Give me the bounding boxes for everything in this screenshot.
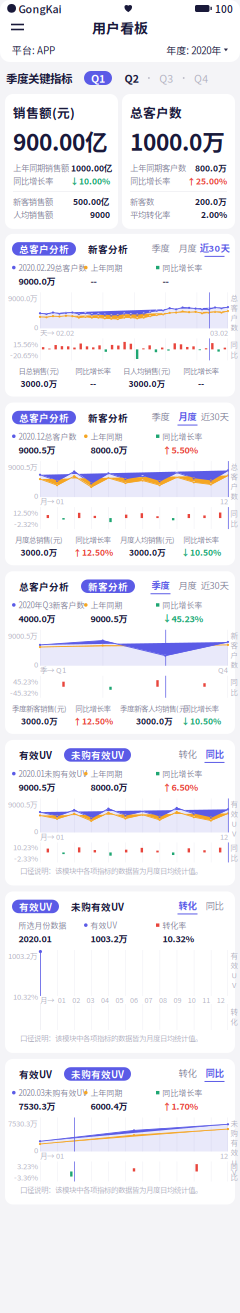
staticText: 9000.5万	[8, 630, 38, 641]
button[interactable]: 近30天	[201, 577, 228, 595]
staticText: 9000.5万	[19, 443, 56, 456]
staticText: 效	[230, 808, 237, 819]
staticText: 8000.0万	[91, 443, 128, 456]
staticText: -3.36%	[14, 1171, 38, 1183]
button[interactable]: 年度: 2020年	[166, 40, 228, 60]
button[interactable]: 总客户分析	[12, 411, 76, 424]
staticText: 6000.4万	[91, 1099, 128, 1112]
button[interactable]: 有效UV	[12, 900, 59, 913]
button[interactable]: 月度	[174, 240, 201, 258]
staticText: 天→ 02.02	[40, 327, 74, 338]
staticText: 客	[230, 302, 237, 313]
button[interactable]: 转化	[174, 746, 201, 764]
button[interactable]: 未购有效UV	[64, 1067, 131, 1081]
staticText: 同比增长率	[162, 431, 202, 442]
button[interactable]: 月度	[174, 408, 201, 426]
button[interactable]: Q1	[84, 71, 112, 85]
staticText: 有效UV	[19, 748, 52, 762]
staticText: 未购有效UV	[71, 748, 124, 762]
staticText: 上年同期	[91, 768, 123, 779]
staticText: 7530.3万	[19, 1099, 56, 1112]
staticText: 同比增长率	[162, 1087, 202, 1098]
button[interactable]: Q4	[193, 71, 210, 85]
staticText: 总客户分析	[19, 242, 69, 256]
button[interactable]: 同比	[201, 1065, 228, 1083]
staticText: 15.56%	[13, 338, 38, 349]
button[interactable]: 转化	[174, 897, 201, 915]
staticText: 总客户数	[130, 103, 182, 121]
staticText: 03	[87, 995, 95, 1005]
button[interactable]: 新客分析	[81, 411, 135, 424]
staticText: 口径说明：该模块中各项指标的数据皆为月度日均统计值。	[20, 1033, 202, 1043]
staticText: 9000.5万	[8, 461, 38, 472]
button[interactable]: 近30天	[201, 240, 228, 258]
staticText: 0	[34, 659, 38, 670]
staticText: 11	[202, 995, 210, 1005]
button[interactable]: Menu	[8, 18, 27, 36]
button[interactable]: 同比	[201, 746, 228, 764]
staticText: 月度	[178, 409, 196, 423]
staticText: 总客户分析	[19, 579, 69, 593]
button[interactable]: 有效UV	[12, 1067, 59, 1081]
button[interactable]: 季度	[147, 240, 174, 258]
staticText: 月度	[178, 241, 196, 254]
staticText: 同	[230, 1161, 237, 1172]
staticText: 购	[230, 1127, 237, 1138]
staticText: 45.23%	[13, 676, 38, 687]
button[interactable]: 平台: APP	[12, 40, 55, 60]
staticText: 数	[230, 322, 237, 333]
staticText: 上年同期	[91, 599, 123, 611]
staticText: 销售额(元)	[13, 103, 75, 121]
staticText: 新	[230, 630, 237, 641]
staticText: ↑12.50%	[73, 715, 113, 727]
staticText: 有	[230, 1137, 237, 1148]
staticText: 比	[230, 518, 237, 528]
staticText: ↓45.23%	[163, 612, 204, 625]
staticText: 户	[230, 649, 237, 660]
button[interactable]: 近30天	[201, 408, 228, 426]
button[interactable]: Q2	[123, 71, 140, 85]
staticText: 季度	[151, 409, 169, 423]
button[interactable]: 转化	[174, 1065, 201, 1083]
staticText: 上年同期客户数	[130, 162, 186, 174]
staticText: 9000.5万	[91, 612, 128, 625]
staticText: 01	[58, 995, 66, 1005]
staticText: 化	[230, 1016, 237, 1027]
staticText: 近30天	[199, 241, 229, 254]
button[interactable]: 季度	[147, 408, 174, 426]
staticText: 1003.2万	[91, 932, 128, 945]
button[interactable]: 未购有效UV	[64, 900, 131, 913]
staticText: 未购有效UV	[71, 899, 124, 913]
button[interactable]: 新客分析	[81, 579, 135, 593]
staticText: 10.32%	[13, 991, 38, 1002]
staticText: 07	[144, 995, 152, 1005]
staticText: 转化	[178, 747, 196, 760]
staticText: 近30天	[200, 578, 228, 592]
staticText: ↑6.50%	[163, 780, 199, 793]
button[interactable]: 总客户分析	[12, 579, 76, 593]
staticText: -2.33%	[14, 852, 38, 864]
staticText: 9000.5万	[8, 798, 38, 810]
staticText: 9000.0万	[8, 292, 38, 304]
staticText: 近30天	[200, 409, 228, 423]
button[interactable]: 未购有效UV	[64, 748, 131, 762]
staticText: 同比	[205, 747, 223, 760]
staticText: 12	[220, 496, 228, 506]
button[interactable]: 同比	[201, 897, 228, 915]
button[interactable]: 有效UV	[12, 748, 59, 762]
staticText: 同比增长率	[183, 365, 218, 376]
staticText: 06	[130, 995, 138, 1005]
button[interactable]: Q3	[158, 71, 175, 85]
staticText: 客	[230, 640, 237, 650]
staticText: 1000.00亿	[71, 161, 113, 174]
staticText: 4000.0万	[19, 612, 56, 625]
button[interactable]: 月度	[174, 577, 201, 595]
staticText: 1003.2万	[8, 950, 38, 961]
staticText: 同	[230, 339, 237, 350]
staticText: 7530.3万	[8, 1117, 38, 1129]
button[interactable]: 新客分析	[81, 242, 135, 256]
button[interactable]: 总客户分析	[12, 242, 76, 256]
staticText: ↓10.00%	[70, 174, 110, 187]
button[interactable]: 季度	[147, 577, 174, 595]
staticText: 总	[230, 292, 237, 303]
